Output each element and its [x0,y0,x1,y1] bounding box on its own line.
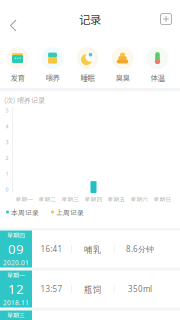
staticText: 星期三 [61,195,79,203]
staticText: 星期四 [84,195,102,203]
staticText: 星期六 [130,195,148,203]
staticText: 体温 [150,72,164,83]
button[interactable]: 睡眠 [70,47,105,83]
staticText: 记录 [79,11,101,27]
staticText: 睡眠 [80,72,94,83]
staticText: 臭臭 [115,72,129,83]
button[interactable]: Add record [154,7,178,31]
button[interactable]: 星期一 [0,270,180,307]
staticText: 星期一 [7,271,25,280]
staticText: 350ml [128,284,152,294]
staticText: 星期日 [153,195,171,203]
staticText: 13:57 [40,284,62,294]
staticText: (次) 喂养记录 [4,95,45,105]
staticText: 星期一 [15,195,33,203]
staticText: 瓶饲 [84,283,102,295]
button[interactable]: 体温 [140,47,175,83]
staticText: 8.6分钟 [126,244,154,254]
button[interactable]: 臭臭 [105,47,140,83]
staticText: 12 [8,280,24,298]
staticText: 4 [5,123,8,130]
button[interactable]: Back [2,0,26,38]
staticText: 16:41 [40,244,62,254]
staticText: 星期四 [7,231,25,240]
button[interactable]: 发育 [0,47,35,83]
staticText: 上周记录 [56,207,84,217]
staticText: 星期五 [107,195,125,203]
staticText: 5 [5,107,8,114]
staticText: 哺乳 [84,243,102,255]
staticText: 0 [5,186,8,193]
staticText: 09 [8,240,24,258]
staticText: 2020.01 [3,258,29,267]
staticText: 星期三 [7,311,25,320]
staticText: 1 [5,170,8,177]
button[interactable]: 星期三 [0,310,180,320]
staticText: 星期二 [38,195,56,203]
staticText: 发育 [10,72,24,83]
staticText: 2018.11 [3,298,29,307]
button[interactable]: 喂养 [35,47,70,83]
staticText: 2 [5,154,8,161]
staticText: 3 [5,139,8,146]
button[interactable]: 星期四 [0,230,180,267]
staticText: 本周记录 [11,207,39,217]
staticText: 喂养 [45,72,59,83]
